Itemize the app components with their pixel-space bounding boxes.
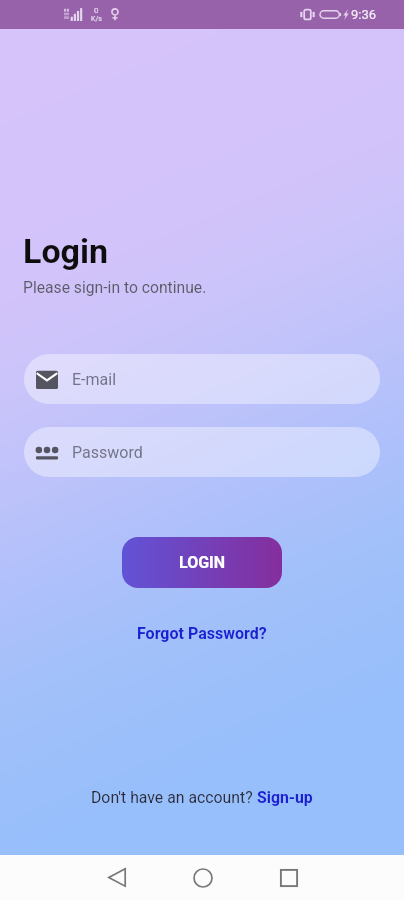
staticText: Don't have an account? (91, 788, 257, 807)
staticText: E-mail (72, 370, 117, 389)
button[interactable]: Password (24, 427, 380, 477)
staticText: Login (23, 231, 109, 271)
staticText: 9:36 (351, 7, 377, 22)
staticText: K/s (91, 15, 102, 23)
staticText: Please sign-in to continue. (23, 278, 207, 296)
button[interactable]: LOGIN (122, 537, 282, 588)
staticText: LOGIN (179, 553, 226, 572)
button[interactable]: Home (179, 855, 227, 900)
staticText: 0 (94, 6, 99, 15)
button[interactable]: Forgot Password? (129, 621, 275, 646)
button[interactable]: E-mail (24, 354, 380, 404)
staticText: Password (72, 443, 143, 462)
button[interactable]: Back (93, 855, 141, 900)
button[interactable]: Sign-up (257, 788, 313, 807)
staticText: Forgot Password? (137, 624, 267, 643)
staticText: Sign-up (257, 788, 313, 807)
button[interactable]: Recents (265, 855, 313, 900)
